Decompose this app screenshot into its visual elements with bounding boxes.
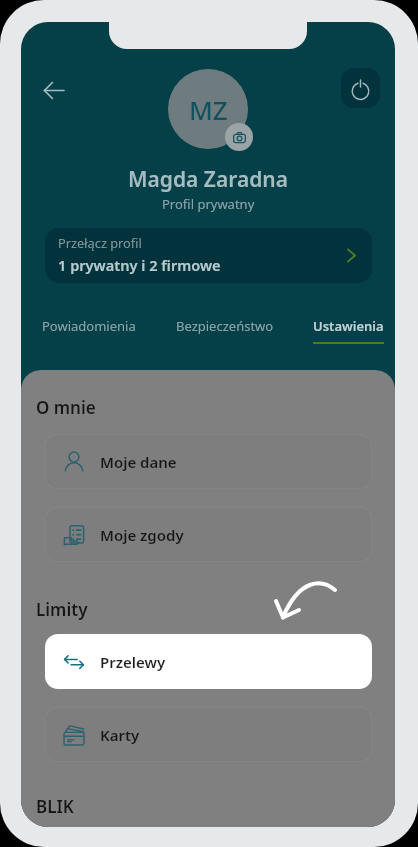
- button[interactable]: Przelewy: [45, 634, 372, 689]
- staticText: Moje zgody: [100, 525, 184, 545]
- staticText: Bezpieczeństwo: [176, 317, 274, 335]
- staticText: Przelewy: [100, 652, 166, 672]
- button[interactable]: MZ: [168, 69, 248, 149]
- button[interactable]: Przełącz profil: [45, 228, 372, 283]
- button[interactable]: Powiadomienia: [42, 317, 136, 344]
- staticText: Limity: [36, 598, 88, 621]
- button[interactable]: Bezpieczeństwo: [176, 317, 274, 344]
- staticText: Karty: [100, 725, 140, 745]
- staticText: Profil prywatny: [162, 195, 255, 213]
- button[interactable]: Karty: [45, 707, 372, 762]
- button[interactable]: Log out: [341, 68, 380, 108]
- button[interactable]: Moje dane: [45, 434, 372, 489]
- button[interactable]: Ustawienia: [313, 317, 384, 344]
- staticText: O mnie: [36, 396, 96, 419]
- staticText: BLIK: [36, 795, 74, 818]
- staticText: Powiadomienia: [42, 317, 136, 335]
- staticText: Magda Zaradna: [128, 165, 289, 194]
- staticText: Przełącz profil: [58, 234, 142, 251]
- button[interactable]: Change profile photo: [225, 123, 253, 151]
- staticText: Ustawienia: [313, 317, 384, 335]
- button[interactable]: Moje zgody: [45, 507, 372, 562]
- staticText: 1 prywatny i 2 firmowe: [58, 255, 221, 275]
- button[interactable]: Back: [30, 66, 78, 114]
- staticText: MZ: [189, 92, 228, 127]
- staticText: Moje dane: [100, 452, 177, 472]
